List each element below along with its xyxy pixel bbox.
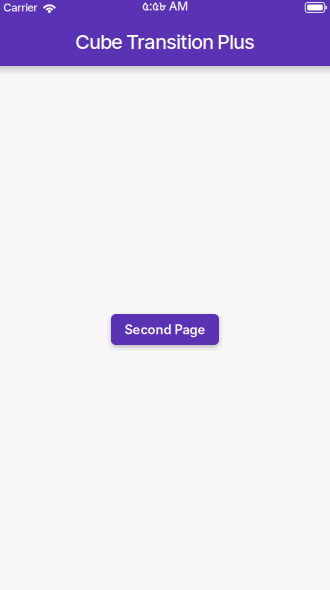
button[interactable]: Second Page [111, 314, 219, 345]
staticText: Carrier [3, 1, 37, 14]
staticText: Cube Transition Plus [75, 30, 254, 54]
staticText: ৫:৫৮ AM [142, 0, 188, 16]
staticText: Second Page [124, 322, 205, 337]
